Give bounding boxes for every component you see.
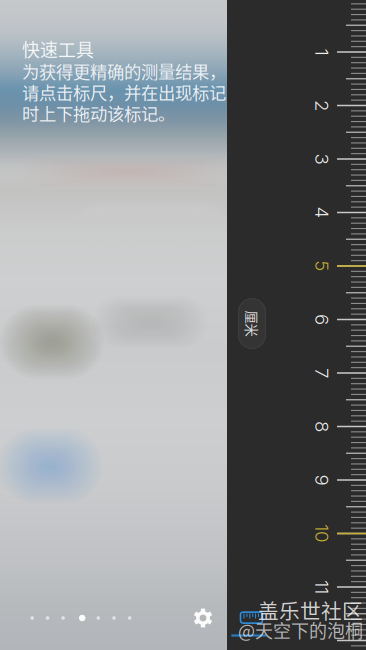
staticText: 5 <box>316 255 327 277</box>
staticText: 请点击标尺，并在出现标记 <box>22 79 226 105</box>
staticText: 时上下拖动该标记。 <box>22 100 175 126</box>
staticText: 9 <box>316 469 327 491</box>
staticText: 盖乐世社区 <box>258 595 363 625</box>
staticText: @天空下的泡桐 <box>238 617 363 643</box>
staticText: 10 <box>312 522 331 545</box>
staticText: 6 <box>316 308 327 331</box>
staticText: 4 <box>316 201 328 224</box>
staticText: 7 <box>317 362 327 384</box>
button[interactable]: 厘米 <box>238 297 266 349</box>
staticText: 厘米 <box>239 314 265 333</box>
button[interactable]: Settings <box>183 598 223 638</box>
staticText: 1 <box>318 41 325 63</box>
staticText: 8 <box>316 415 327 438</box>
staticText: 11 <box>315 576 329 598</box>
staticText: 2 <box>316 94 327 117</box>
staticText: 快速工具 <box>22 36 94 62</box>
staticText: 3 <box>316 148 327 170</box>
staticText: 为获得更精确的测量结果， <box>22 58 226 84</box>
